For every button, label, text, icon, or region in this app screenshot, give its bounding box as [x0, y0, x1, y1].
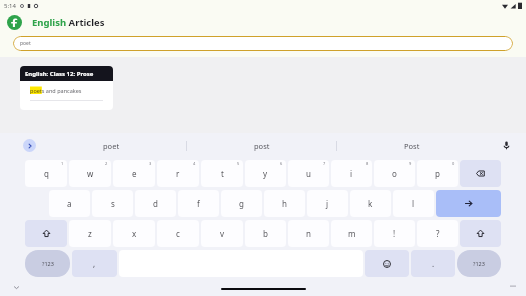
- button[interactable]: i: [331, 160, 372, 187]
- button[interactable]: a: [49, 190, 90, 217]
- staticText: k: [368, 198, 373, 209]
- button[interactable]: poet: [36, 133, 186, 158]
- staticText: ?123: [42, 260, 54, 267]
- button[interactable]: post: [187, 133, 336, 158]
- staticText: !: [393, 228, 396, 239]
- button[interactable]: s: [92, 190, 133, 217]
- staticText: Post: [404, 141, 420, 151]
- button[interactable]: x: [113, 220, 155, 247]
- staticText: t: [221, 168, 224, 179]
- button[interactable]: !: [374, 220, 415, 247]
- staticText: x: [132, 228, 137, 239]
- staticText: 5:14: [4, 2, 16, 10]
- button[interactable]: Shift: [25, 220, 67, 247]
- staticText: d: [153, 198, 158, 209]
- button[interactable]: Emoji: [365, 250, 409, 277]
- button[interactable]: u: [288, 160, 329, 187]
- staticText: z: [88, 228, 92, 239]
- staticText: 5: [237, 161, 240, 166]
- staticText: n: [306, 228, 311, 239]
- button[interactable]: c: [157, 220, 199, 247]
- staticText: post: [254, 141, 270, 151]
- button[interactable]: z: [69, 220, 111, 247]
- button[interactable]: English: Class 12: Prose: [20, 66, 113, 110]
- button[interactable]: poet: [13, 36, 513, 51]
- staticText: 6: [280, 161, 283, 166]
- button[interactable]: o: [374, 160, 415, 187]
- staticText: e: [132, 168, 137, 179]
- button[interactable]: More suggestions: [23, 139, 36, 152]
- staticText: poet: [20, 40, 31, 47]
- staticText: 9: [409, 161, 412, 166]
- button[interactable]: t: [201, 160, 243, 187]
- staticText: 3: [149, 161, 152, 166]
- staticText: 0: [452, 161, 455, 166]
- staticText: p: [435, 168, 440, 179]
- staticText: r: [176, 168, 180, 179]
- staticText: j: [326, 198, 329, 209]
- staticText: v: [220, 228, 225, 239]
- staticText: 8: [366, 161, 369, 166]
- staticText: g: [239, 198, 244, 209]
- button[interactable]: n: [288, 220, 329, 247]
- staticText: w: [87, 168, 94, 179]
- button[interactable]: f: [178, 190, 219, 217]
- button[interactable]: l: [393, 190, 434, 217]
- staticText: q: [44, 168, 49, 179]
- button[interactable]: q: [25, 160, 67, 187]
- staticText: i: [350, 168, 353, 179]
- button[interactable]: p: [417, 160, 458, 187]
- staticText: u: [306, 168, 311, 179]
- staticText: l: [412, 198, 415, 209]
- button[interactable]: v: [201, 220, 243, 247]
- button[interactable]: Post: [337, 133, 486, 158]
- button[interactable]: j: [307, 190, 348, 217]
- button[interactable]: Hide keyboard: [13, 284, 20, 291]
- staticText: English: Class 12: Prose: [25, 70, 94, 78]
- button[interactable]: b: [245, 220, 286, 247]
- staticText: .: [432, 258, 435, 269]
- button[interactable]: m: [331, 220, 372, 247]
- staticText: 7: [323, 161, 326, 166]
- staticText: English Articles: [32, 16, 105, 29]
- staticText: 2: [105, 161, 108, 166]
- staticText: m: [348, 228, 356, 239]
- button[interactable]: d: [135, 190, 176, 217]
- button[interactable]: r: [157, 160, 199, 187]
- button[interactable]: ?: [417, 220, 458, 247]
- button[interactable]: y: [245, 160, 286, 187]
- staticText: poet: [103, 141, 120, 151]
- staticText: a: [67, 198, 72, 209]
- staticText: c: [176, 228, 180, 239]
- staticText: ?: [436, 228, 440, 239]
- staticText: b: [263, 228, 268, 239]
- staticText: o: [392, 168, 397, 179]
- staticText: 1: [61, 161, 64, 166]
- button[interactable]: App logo: [7, 15, 22, 30]
- button[interactable]: g: [221, 190, 262, 217]
- button[interactable]: h: [264, 190, 305, 217]
- button[interactable]: Shift: [460, 220, 501, 247]
- button[interactable]: ?123: [25, 250, 70, 277]
- staticText: h: [282, 198, 287, 209]
- staticText: f: [197, 198, 200, 209]
- button[interactable]: Voice input: [486, 133, 526, 158]
- staticText: ?123: [473, 260, 485, 267]
- staticText: s: [111, 198, 115, 209]
- staticText: y: [263, 168, 268, 179]
- button[interactable]: k: [350, 190, 391, 217]
- staticText: 4: [193, 161, 196, 166]
- button[interactable]: Backspace: [460, 160, 501, 187]
- button[interactable]: ,: [72, 250, 117, 277]
- button[interactable]: Enter: [436, 190, 501, 217]
- button[interactable]: ?123: [457, 250, 501, 277]
- staticText: poets and pancakes: [30, 87, 82, 94]
- button[interactable]: w: [69, 160, 111, 187]
- button[interactable]: e: [113, 160, 155, 187]
- staticText: ,: [93, 258, 96, 269]
